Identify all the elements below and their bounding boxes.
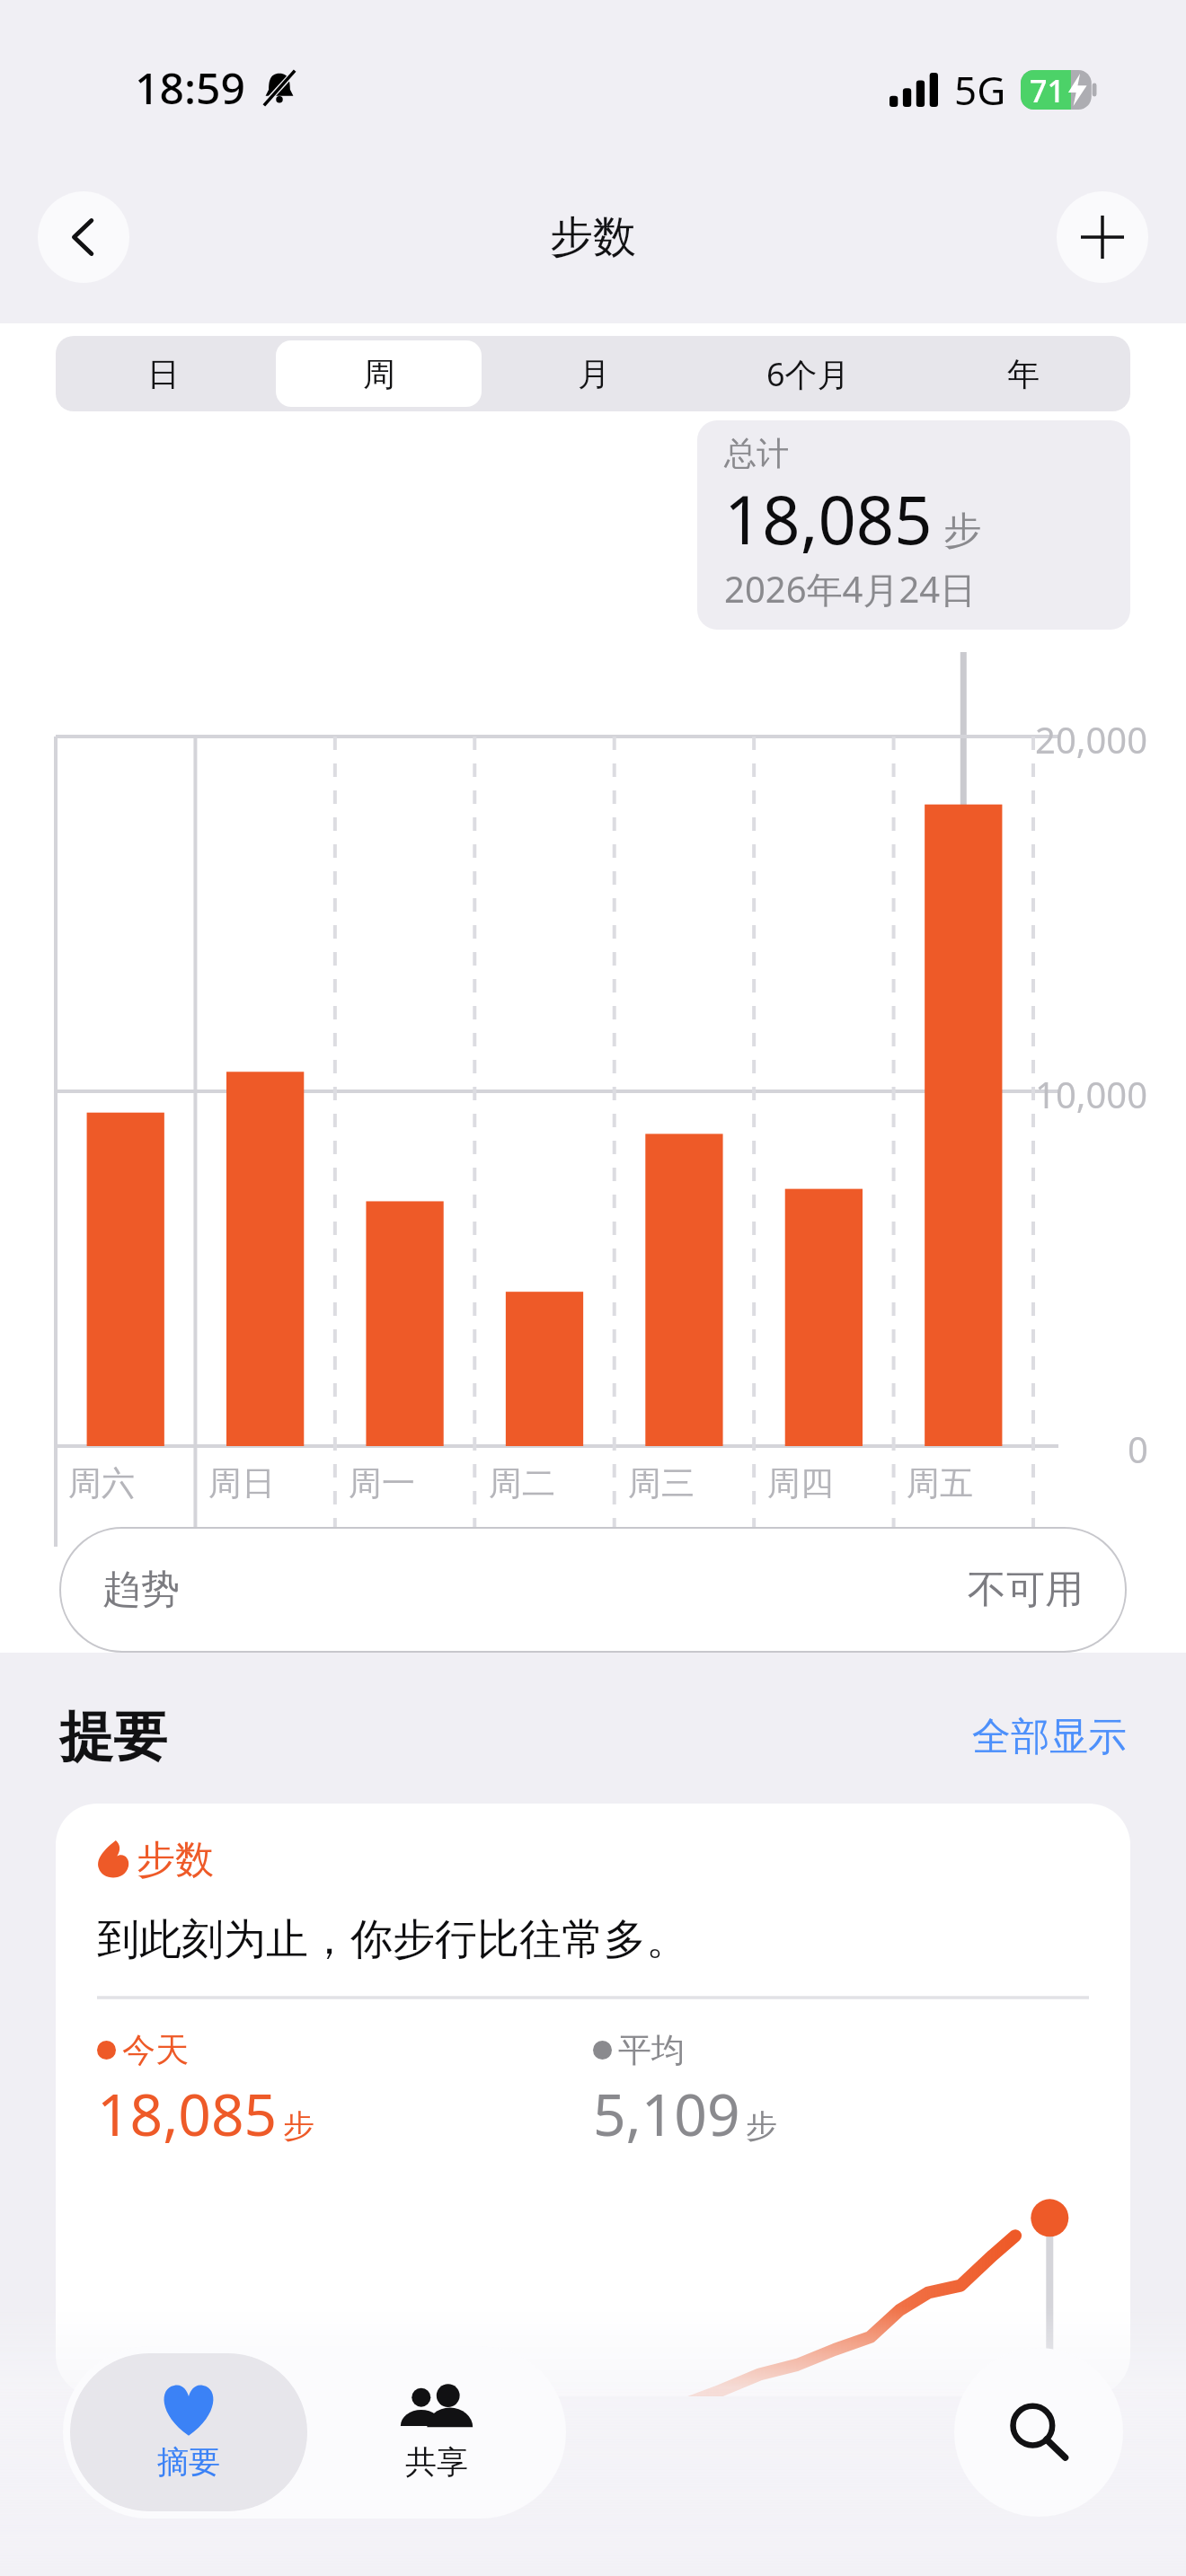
staticText: 步数 bbox=[550, 210, 636, 264]
button[interactable]: Add data bbox=[1057, 191, 1148, 283]
button[interactable]: Back bbox=[38, 191, 129, 283]
button[interactable]: 年 bbox=[920, 340, 1126, 407]
button[interactable]: 月 bbox=[491, 340, 696, 407]
staticText: 周三 bbox=[628, 1462, 695, 1504]
staticText: 6个月 bbox=[766, 352, 850, 396]
staticText: 周日 bbox=[208, 1462, 275, 1504]
staticText: 不可用 bbox=[968, 1566, 1084, 1614]
staticText: 周二 bbox=[489, 1462, 555, 1504]
staticText: 趋势 bbox=[102, 1566, 180, 1614]
staticText: 周六 bbox=[68, 1462, 135, 1504]
staticText: 步 bbox=[943, 507, 981, 555]
staticText: 20,000 bbox=[1035, 715, 1148, 763]
staticText: 2026年4月24日 bbox=[724, 564, 977, 613]
staticText: 年 bbox=[1007, 354, 1040, 394]
staticText: 摘要 bbox=[157, 2442, 220, 2482]
button[interactable]: Search bbox=[954, 2348, 1123, 2517]
button[interactable]: 步数 bbox=[56, 1804, 1130, 2396]
staticText: 步 bbox=[283, 2106, 314, 2146]
button[interactable]: 日 bbox=[60, 340, 267, 407]
button[interactable]: 共享 bbox=[307, 2346, 566, 2519]
button[interactable]: 趋势 bbox=[59, 1527, 1127, 1653]
button[interactable]: 摘要 bbox=[70, 2353, 307, 2511]
staticText: 18,085 bbox=[724, 473, 933, 564]
staticText: 月 bbox=[578, 354, 610, 394]
staticText: 共享 bbox=[405, 2442, 468, 2482]
staticText: 18,085 bbox=[97, 2075, 278, 2153]
staticText: 步数 bbox=[137, 1836, 214, 1884]
staticText: 10,000 bbox=[1035, 1070, 1148, 1118]
staticText: 全部显示 bbox=[972, 1713, 1127, 1761]
button[interactable]: 全部显示 bbox=[972, 1713, 1127, 1761]
staticText: 71 bbox=[1030, 70, 1065, 110]
staticText: 提要 bbox=[59, 1703, 167, 1771]
button[interactable]: 周 bbox=[276, 340, 482, 407]
staticText: 5G bbox=[954, 63, 1006, 117]
staticText: 周五 bbox=[907, 1462, 973, 1504]
staticText: 18:59 bbox=[135, 58, 245, 117]
staticText: 到此刻为止，你步行比往常多。 bbox=[97, 1913, 688, 1966]
staticText: 今天 bbox=[122, 2029, 189, 2071]
staticText: 周 bbox=[363, 354, 395, 394]
button[interactable]: 6个月 bbox=[705, 340, 911, 407]
staticText: 总计 bbox=[724, 433, 789, 473]
staticText: 5,109 bbox=[593, 2075, 740, 2153]
staticText: 日 bbox=[147, 354, 180, 394]
staticText: 平均 bbox=[618, 2029, 685, 2071]
staticText: 步 bbox=[746, 2106, 777, 2146]
staticText: 0 bbox=[1128, 1425, 1148, 1473]
staticText: 周一 bbox=[349, 1462, 415, 1504]
staticText: 周四 bbox=[767, 1462, 834, 1504]
